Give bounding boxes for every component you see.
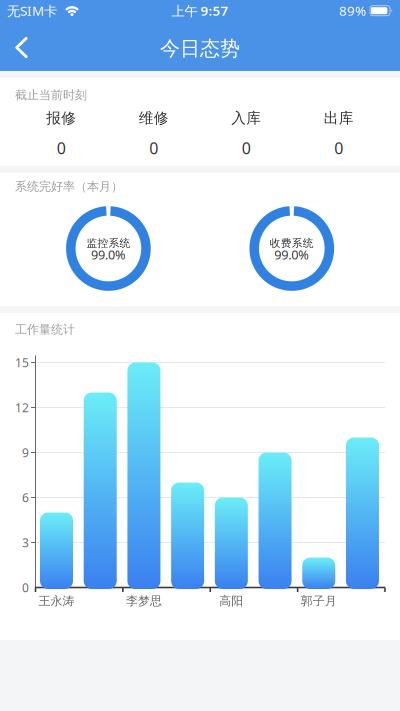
button[interactable]: 返回 [0, 33, 44, 62]
staticText: 0 [149, 137, 158, 159]
staticText: 入库 [231, 109, 261, 127]
staticText: 今日态势 [160, 36, 240, 61]
staticText: 出库 [324, 109, 354, 127]
staticText: 0 [242, 137, 251, 159]
staticText: 上午 9:57 [171, 2, 228, 19]
staticText: 99.0% [91, 246, 126, 263]
staticText: 王永涛 [38, 594, 74, 608]
staticText: 无SIM卡 [7, 2, 57, 19]
staticText: 收费系统 [270, 236, 314, 250]
staticText: 监控系统 [86, 236, 130, 250]
staticText: 0 [22, 579, 29, 595]
staticText: 系统完好率（本月） [15, 179, 123, 194]
staticText: 高阳 [219, 594, 243, 608]
staticText: 0 [334, 137, 343, 159]
staticText: 9 [22, 444, 29, 460]
staticText: 李梦思 [126, 594, 162, 608]
staticText: 郭子月 [301, 594, 337, 608]
staticText: 89% [339, 2, 366, 19]
staticText: 截止当前时刻 [15, 88, 87, 102]
staticText: 0 [57, 137, 66, 159]
staticText: 6 [22, 489, 29, 505]
staticText: 15 [15, 354, 29, 370]
staticText: 报修 [46, 109, 76, 127]
staticText: 工作量统计 [15, 322, 75, 337]
staticText: 3 [22, 534, 29, 550]
staticText: 12 [15, 399, 29, 415]
staticText: 99.0% [274, 246, 309, 263]
staticText: 维修 [139, 109, 169, 127]
